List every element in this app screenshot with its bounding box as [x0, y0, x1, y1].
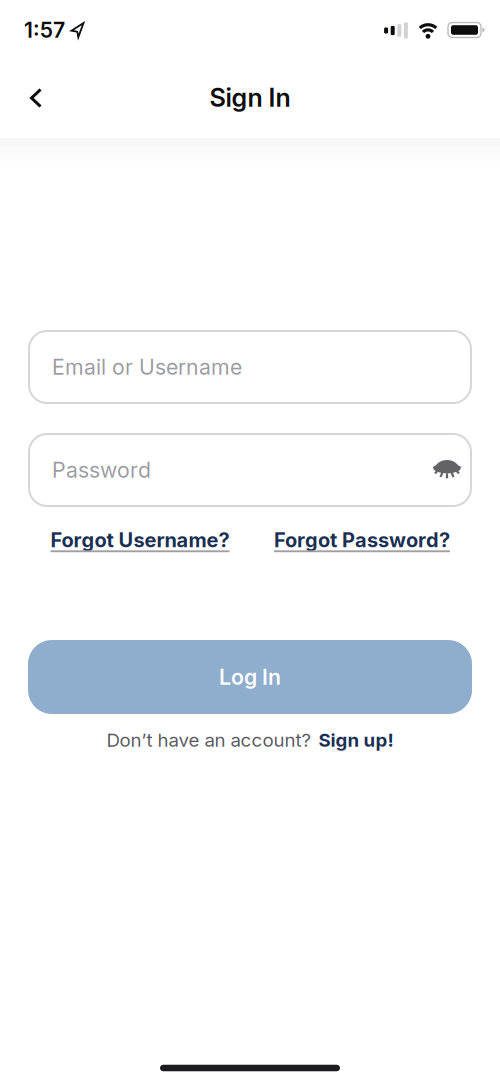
staticText: Password: [52, 457, 151, 483]
button[interactable]: Log In: [28, 640, 472, 714]
button[interactable]: Forgot Password?: [274, 528, 450, 552]
button[interactable]: Back: [14, 76, 58, 120]
staticText: 1:57: [24, 17, 65, 43]
staticText: Don’t have an account?: [106, 729, 311, 751]
button[interactable]: Show password: [433, 460, 463, 480]
staticText: Sign In: [209, 83, 290, 112]
staticText: Forgot Password?: [274, 528, 450, 552]
staticText: Email or Username: [52, 354, 242, 380]
staticText: Sign up!: [318, 729, 393, 751]
staticText: Forgot Username?: [50, 528, 229, 552]
button[interactable]: Sign up!: [318, 729, 393, 751]
button[interactable]: Forgot Username?: [50, 528, 229, 552]
staticText: Log In: [219, 664, 281, 690]
